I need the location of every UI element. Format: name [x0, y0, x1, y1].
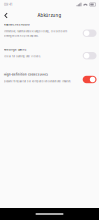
staticText: High-definition Codecs (AAC) — [4, 73, 48, 76]
staticText: Immersive, raumfüllende Klangbildung, di… — [4, 30, 67, 33]
staticText: Abkürzung — [37, 13, 61, 18]
staticText: 09:41 — [4, 3, 12, 6]
button[interactable]: Niedrige Latenz — [0, 48, 99, 73]
staticText: Niedrige Latenz — [4, 48, 26, 51]
staticText: Ideal für Gaming und Videos. — [4, 55, 41, 58]
button[interactable]: Back — [0, 9, 12, 21]
button[interactable]: High-definition Codecs (AAC) — [0, 73, 99, 98]
staticText: Bewegen des Kopfes anpasst. — [4, 34, 39, 37]
button[interactable]: Räumliches Audio — [0, 23, 99, 48]
staticText: Bessere Tonqualität bei kompatiblen Gerä… — [4, 80, 71, 83]
staticText: Räumliches Audio — [4, 23, 30, 26]
